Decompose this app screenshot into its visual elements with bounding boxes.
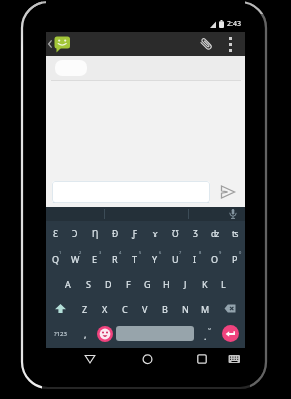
staticText: Ð	[112, 228, 119, 240]
button[interactable]: L	[214, 271, 233, 296]
button[interactable]	[227, 208, 239, 220]
button[interactable]: Ƞ	[85, 221, 105, 246]
staticText: Ɔ	[72, 228, 78, 240]
staticText: 2:43	[227, 19, 241, 29]
button[interactable]: P	[225, 246, 245, 271]
staticText: ʣ	[211, 228, 220, 240]
button[interactable]: W	[65, 246, 85, 271]
staticText: Ɛ	[53, 228, 58, 240]
button[interactable]	[196, 353, 208, 365]
staticText: ʦ	[232, 228, 239, 240]
button[interactable]: ,	[75, 321, 95, 346]
button[interactable]: Ɔ	[65, 221, 85, 246]
button[interactable]	[218, 182, 238, 202]
staticText: 4	[119, 250, 122, 255]
button[interactable]	[46, 296, 75, 321]
button[interactable]: R	[105, 246, 125, 271]
staticText: A	[65, 278, 71, 290]
staticText: 6	[159, 250, 162, 255]
staticText: W	[71, 253, 80, 265]
button[interactable]: H	[157, 271, 176, 296]
staticText: G	[144, 278, 151, 290]
button[interactable]: C	[115, 296, 135, 321]
button[interactable]: Ð	[105, 221, 125, 246]
button[interactable]: Ʒ	[185, 221, 205, 246]
staticText: 1	[59, 250, 62, 255]
staticText: K	[202, 278, 208, 290]
staticText: ɤ	[153, 228, 158, 240]
button[interactable]: T	[125, 246, 145, 271]
staticText: Z	[82, 303, 88, 315]
staticText: 7	[179, 250, 182, 255]
staticText: C	[122, 303, 128, 315]
button[interactable]: F	[118, 271, 138, 296]
staticText: Y	[152, 253, 158, 265]
staticText: N	[182, 303, 189, 315]
button[interactable]: Ƒ	[125, 221, 145, 246]
staticText: S	[86, 278, 91, 290]
button[interactable]: ?123	[46, 321, 75, 346]
button[interactable]	[141, 353, 154, 366]
button[interactable]	[52, 181, 210, 203]
button[interactable]: X	[95, 296, 115, 321]
button[interactable]	[229, 37, 232, 52]
button[interactable]: V	[135, 296, 155, 321]
staticText: M	[201, 303, 210, 315]
button[interactable]: E	[85, 246, 105, 271]
staticText: J	[184, 278, 187, 290]
button[interactable]	[46, 35, 71, 53]
staticText: 0	[239, 250, 242, 255]
staticText: B	[162, 303, 168, 315]
button[interactable]: B	[155, 296, 175, 321]
button[interactable]: ɤ	[145, 221, 165, 246]
button[interactable]	[196, 34, 216, 54]
staticText: 3	[99, 250, 102, 255]
button[interactable]: K	[195, 271, 214, 296]
staticText: U	[172, 253, 179, 265]
button[interactable]: J	[176, 271, 195, 296]
staticText: .	[204, 330, 207, 342]
staticText: Ʒ	[193, 228, 198, 240]
button[interactable]	[215, 321, 245, 346]
staticText: F	[126, 278, 131, 290]
button[interactable]	[115, 321, 195, 346]
button[interactable]	[95, 321, 115, 346]
staticText: Q	[52, 253, 60, 265]
staticText: H	[163, 278, 170, 290]
button[interactable]: D	[98, 271, 118, 296]
button[interactable]: Y	[145, 246, 165, 271]
staticText: 2	[79, 250, 82, 255]
button[interactable]: G	[138, 271, 157, 296]
staticText: P	[232, 253, 238, 265]
button[interactable]: S	[78, 271, 98, 296]
staticText: X	[102, 303, 108, 315]
button[interactable]: I	[185, 246, 205, 271]
staticText: I	[193, 253, 197, 265]
staticText: V	[142, 303, 148, 315]
staticText: Ƒ	[132, 228, 138, 240]
button[interactable]: ʣ	[205, 221, 225, 246]
button[interactable]	[84, 353, 96, 365]
button[interactable]	[228, 354, 242, 365]
button[interactable]: Ɛ	[46, 221, 65, 246]
button[interactable]: M	[195, 296, 215, 321]
staticText: ᴹ	[208, 326, 211, 333]
button[interactable]: O	[205, 246, 225, 271]
button[interactable]: ʦ	[225, 221, 245, 246]
button[interactable]	[215, 296, 245, 321]
button[interactable]: A	[58, 271, 78, 296]
staticText: ?123	[54, 330, 67, 338]
staticText: O	[211, 253, 219, 265]
staticText: L	[221, 278, 226, 290]
button[interactable]: Ʊ	[165, 221, 185, 246]
staticText: Ʊ	[172, 228, 179, 240]
staticText: 5	[139, 250, 142, 255]
staticText: 8	[199, 250, 202, 255]
button[interactable]: .	[195, 321, 215, 346]
button[interactable]: N	[175, 296, 195, 321]
button[interactable]: Z	[75, 296, 95, 321]
button[interactable]: U	[165, 246, 185, 271]
staticText: 9	[219, 250, 222, 255]
button[interactable]: Q	[46, 246, 65, 271]
staticText: T	[132, 253, 138, 265]
